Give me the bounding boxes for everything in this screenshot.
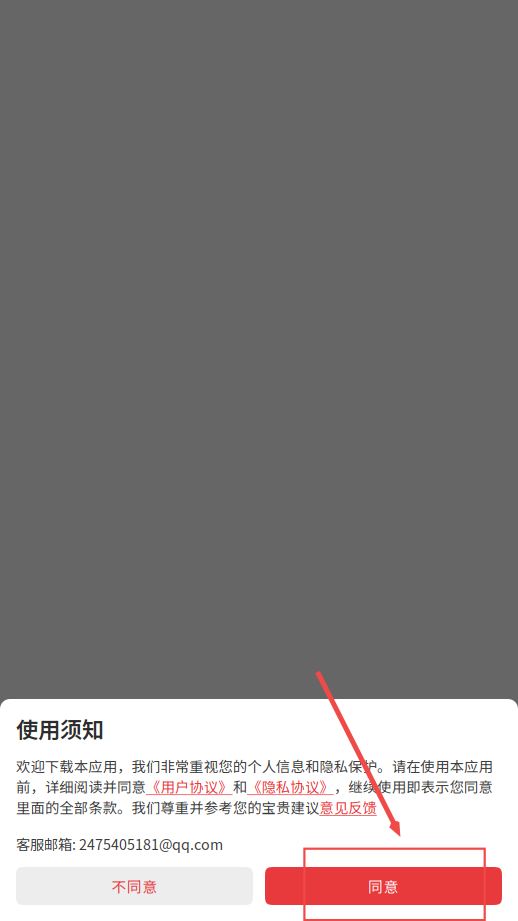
- button[interactable]: 不同意: [16, 867, 253, 905]
- button[interactable]: 同意: [265, 867, 502, 905]
- staticText: 使用须知: [16, 712, 104, 744]
- staticText: 客服邮箱: 2475405181@qq.com: [16, 833, 223, 854]
- staticText: 不同意: [111, 875, 157, 897]
- staticText: 同意: [368, 875, 399, 897]
- staticText: 欢迎下载本应用，我们非常重视您的个人信息和隐私保护。请在使用本应用 前，详细阅读…: [16, 755, 492, 817]
